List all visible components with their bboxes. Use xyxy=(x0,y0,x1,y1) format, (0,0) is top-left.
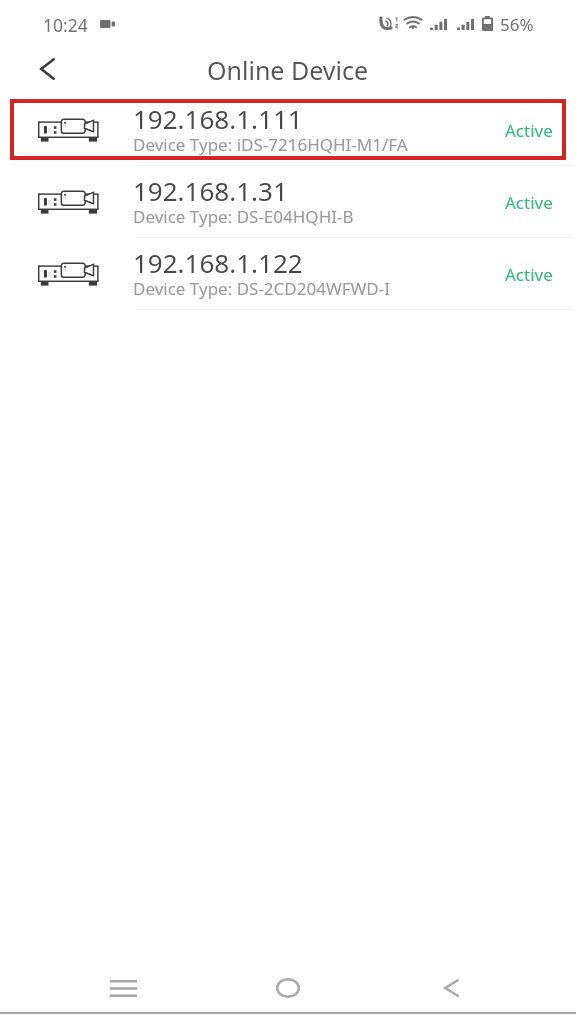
button[interactable]: 192.168.1.31 xyxy=(0,166,576,238)
staticText: Device Type: DS-2CD204WFWD-I xyxy=(133,277,391,300)
button[interactable]: Home xyxy=(260,968,316,1008)
staticText: 10:24 xyxy=(43,13,88,37)
staticText: 56% xyxy=(500,13,534,36)
button[interactable]: Back xyxy=(25,49,69,93)
staticText: Active xyxy=(505,263,553,286)
button[interactable]: Back xyxy=(423,968,479,1008)
staticText: 192.168.1.111 xyxy=(133,101,303,136)
button[interactable]: 192.168.1.111 xyxy=(0,94,576,166)
staticText: Active xyxy=(505,119,553,142)
staticText: 192.168.1.122 xyxy=(133,245,303,280)
staticText: Active xyxy=(505,191,553,214)
staticText: Online Device xyxy=(207,53,369,87)
staticText: Device Type: DS-E04HQHI-B xyxy=(133,205,354,228)
staticText: 192.168.1.31 xyxy=(133,173,288,208)
button[interactable]: Recent apps xyxy=(95,968,152,1008)
staticText: Device Type: iDS-7216HQHI-M1/FA xyxy=(133,133,408,156)
button[interactable]: 192.168.1.122 xyxy=(0,238,576,310)
